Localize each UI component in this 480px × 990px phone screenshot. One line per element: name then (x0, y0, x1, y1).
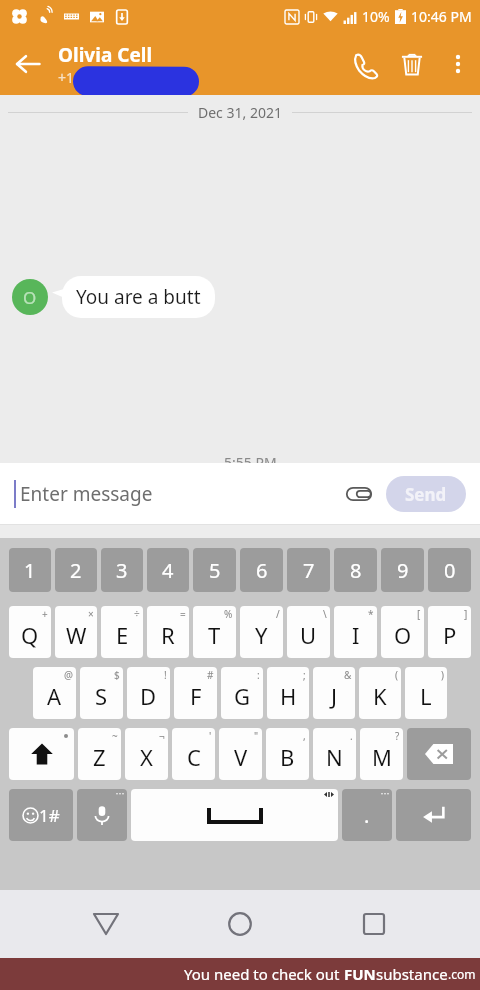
staticText: ( (395, 668, 398, 682)
staticText: + (42, 607, 48, 621)
staticText: L (420, 681, 432, 711)
button[interactable]: Back (78, 896, 134, 952)
staticText: W (66, 620, 87, 650)
staticText: 3 (116, 557, 128, 584)
button[interactable]: J (313, 667, 355, 719)
staticText: .com (448, 966, 476, 982)
button[interactable]: E (101, 606, 143, 658)
staticText: 1 (24, 557, 36, 584)
staticText: ] (464, 607, 468, 621)
button[interactable]: 9 (381, 548, 424, 592)
staticText: M (372, 742, 392, 772)
button[interactable]: Shift (9, 728, 74, 780)
button[interactable]: Back (4, 40, 52, 88)
staticText: substance (376, 964, 448, 984)
staticText: V (234, 742, 248, 772)
button[interactable]: M (360, 728, 403, 780)
staticText: You are a butt (76, 284, 201, 310)
button[interactable]: 2 (55, 548, 97, 592)
button[interactable]: More options (436, 42, 480, 86)
staticText: ; (303, 668, 306, 682)
button[interactable]: X (125, 728, 168, 780)
button[interactable]: 1# (9, 789, 73, 841)
button[interactable]: N (313, 728, 356, 780)
button[interactable]: C (172, 728, 215, 780)
button[interactable]: U (287, 606, 330, 658)
button[interactable]: Delete (388, 40, 436, 88)
button[interactable]: 1 (9, 548, 51, 592)
button[interactable]: W (55, 606, 97, 658)
staticText: × (88, 607, 94, 621)
button[interactable]: L (405, 667, 447, 719)
button[interactable]: 3 (101, 548, 143, 592)
button[interactable]: Recents (346, 896, 402, 952)
staticText: Q (21, 620, 39, 650)
staticText: . (350, 729, 353, 743)
button[interactable]: H (267, 667, 309, 719)
staticText: ~ (112, 729, 118, 743)
staticText: Enter message (20, 481, 153, 507)
staticText: ¬ (159, 729, 165, 743)
staticText: 6 (256, 557, 268, 584)
button[interactable]: Y (240, 606, 283, 658)
staticText: % (224, 607, 233, 621)
button[interactable]: A (33, 667, 76, 719)
staticText: * (368, 607, 374, 621)
staticText: [ (417, 607, 421, 621)
staticText: . (364, 802, 370, 829)
button[interactable]: 8 (334, 548, 377, 592)
button[interactable]: Q (9, 606, 51, 658)
button[interactable]: Period (342, 789, 392, 841)
staticText: 7 (303, 557, 315, 584)
staticText: ! (164, 668, 167, 682)
button[interactable]: I (334, 606, 377, 658)
staticText: @ (64, 668, 73, 682)
staticText: S (95, 681, 108, 711)
staticText: 8 (350, 557, 362, 584)
button[interactable]: O (381, 606, 424, 658)
button[interactable]: F (174, 667, 217, 719)
button[interactable]: Voice input (77, 789, 127, 841)
button[interactable]: Enter message (20, 481, 338, 507)
staticText: X (140, 742, 153, 772)
staticText: C (187, 742, 201, 772)
button[interactable]: R (147, 606, 189, 658)
staticText: N (326, 742, 343, 772)
staticText: J (331, 681, 338, 711)
staticText: K (373, 681, 387, 711)
staticText: H (280, 681, 297, 711)
button[interactable]: Home (212, 896, 268, 952)
button[interactable]: You are a butt (62, 276, 215, 318)
button[interactable]: Backspace (407, 728, 471, 780)
button[interactable]: 4 (147, 548, 189, 592)
button[interactable]: G (221, 667, 263, 719)
button[interactable]: 5 (193, 548, 236, 592)
staticText: P (443, 620, 457, 650)
button[interactable]: 0 (428, 548, 471, 592)
staticText: FUN (344, 964, 376, 984)
staticText: G (234, 681, 251, 711)
button[interactable]: P (428, 606, 471, 658)
staticText: You need to check out (184, 964, 344, 984)
button[interactable]: Call (340, 40, 388, 88)
button[interactable]: V (219, 728, 262, 780)
staticText: E (116, 620, 129, 650)
button[interactable]: D (127, 667, 170, 719)
staticText: R (161, 620, 175, 650)
button[interactable]: Send (386, 476, 466, 512)
staticText: Z (93, 742, 106, 772)
button[interactable]: B (266, 728, 309, 780)
button[interactable]: Enter (396, 789, 471, 841)
staticText: , (303, 729, 306, 743)
button[interactable]: Space (131, 789, 338, 841)
button[interactable]: S (80, 667, 123, 719)
staticText: 10:46 PM (411, 7, 472, 26)
button[interactable]: 6 (240, 548, 283, 592)
button[interactable]: K (359, 667, 401, 719)
button[interactable]: Attach (338, 473, 380, 515)
button[interactable]: Z (78, 728, 121, 780)
button[interactable]: T (193, 606, 236, 658)
staticText: 9 (397, 557, 409, 584)
staticText: Y (255, 620, 268, 650)
button[interactable]: 7 (287, 548, 330, 592)
